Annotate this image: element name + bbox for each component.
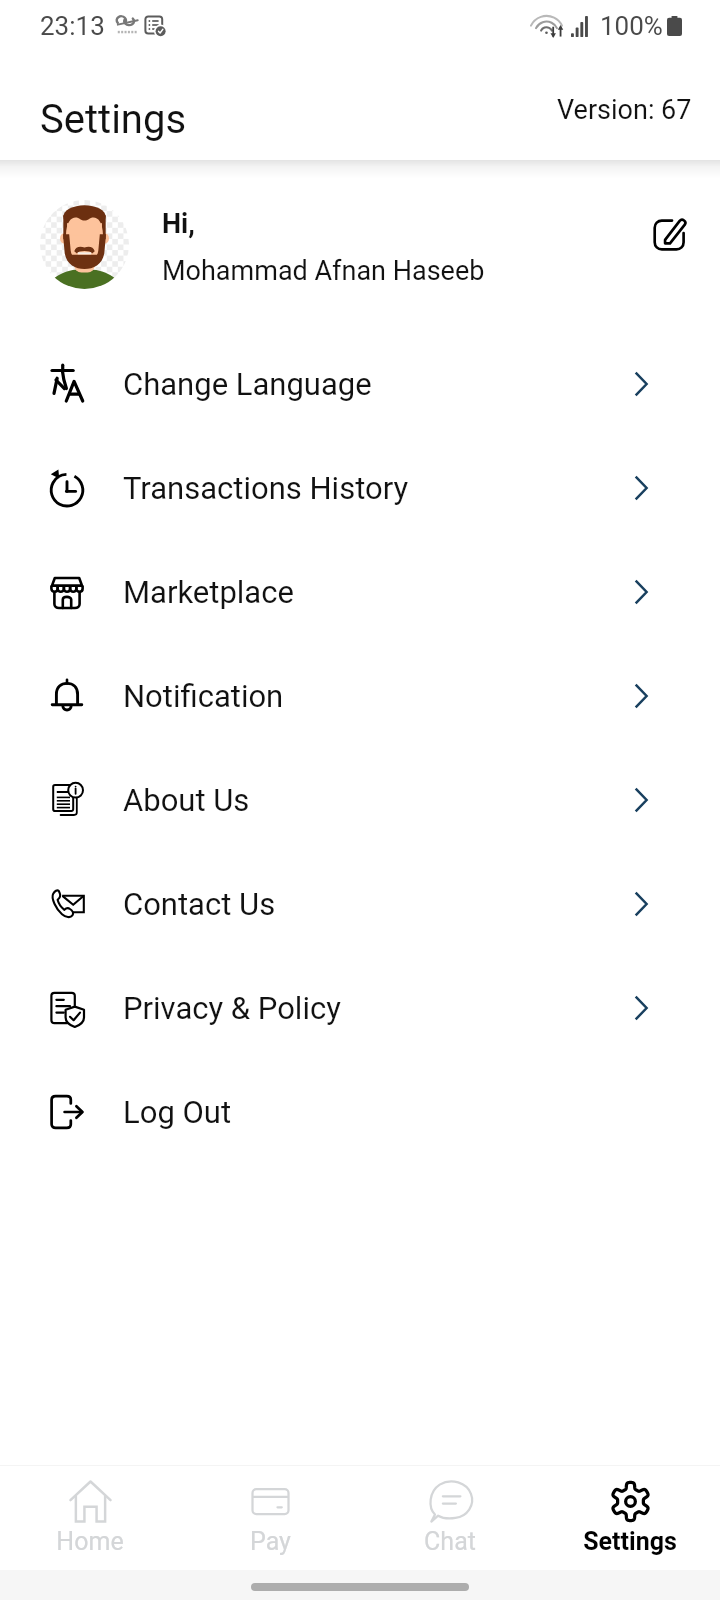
staticText: Notification [123,678,634,714]
staticText: Chat [424,1527,476,1556]
staticText: Contact Us [123,886,634,922]
button[interactable]: Change Language [0,332,720,436]
staticText: Transactions History [123,470,634,506]
staticText: About Us [123,782,634,818]
button[interactable]: Transactions History [0,436,720,540]
staticText: Privacy & Policy [123,990,634,1026]
staticText: Mohammad Afnan Haseeb [162,255,485,287]
button[interactable]: About Us [0,748,720,852]
button[interactable]: Marketplace [0,540,720,644]
staticText: Pay [250,1527,291,1556]
staticText: Hi, [162,208,195,240]
staticText: Marketplace [123,574,634,610]
button[interactable]: Hi, [0,182,720,302]
staticText: Log Out [123,1094,648,1130]
staticText: Version: 67 [557,94,692,126]
button[interactable]: Privacy & Policy [0,956,720,1060]
staticText: 23:13 [40,11,105,41]
button[interactable]: Contact Us [0,852,720,956]
staticText: Change Language [123,366,634,402]
staticText: Settings [40,96,187,143]
button[interactable]: Pay [180,1465,360,1570]
button[interactable]: Log Out [0,1060,720,1164]
button[interactable]: Edit profile [636,201,704,269]
button[interactable]: Home [0,1465,180,1570]
staticText: 100% [600,11,663,41]
button[interactable]: Settings [540,1465,720,1570]
staticText: Home [56,1527,124,1556]
button[interactable]: Notification [0,644,720,748]
button[interactable]: Chat [360,1465,540,1570]
staticText: Settings [583,1527,677,1556]
